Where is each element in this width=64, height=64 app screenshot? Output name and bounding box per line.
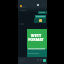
button[interactable]: Balance: [37, 4, 39, 6]
button[interactable]: Bet slip: [43, 59, 46, 62]
button[interactable]: [38, 11, 47, 14]
button[interactable]: Logo: [20, 5, 22, 7]
button[interactable]: [35, 15, 46, 18]
button[interactable]: [34, 18, 46, 23]
button[interactable]: WETT FORMAT: [27, 29, 47, 57]
staticText: WETT FORMAT: [26, 33, 46, 42]
